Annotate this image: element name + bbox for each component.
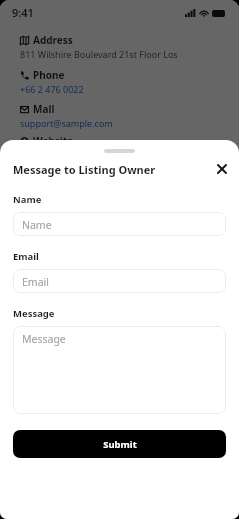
staticText: Name (13, 193, 42, 206)
button[interactable]: Message (13, 326, 226, 414)
staticText: support@sample.com (20, 117, 113, 129)
button[interactable]: Name (13, 212, 226, 236)
staticText: Email (22, 275, 49, 287)
staticText: +66 2 476 0022 (20, 83, 84, 95)
button[interactable]: Close (211, 158, 233, 180)
staticText: Message (22, 332, 66, 346)
button[interactable]: Address (0, 33, 239, 60)
staticText: Address (33, 33, 73, 47)
staticText: Mall (33, 102, 55, 116)
staticText: Message to Listing Owner (13, 162, 211, 177)
button[interactable]: Submit (13, 430, 226, 458)
staticText: Message (13, 307, 55, 320)
button[interactable]: Phone (0, 68, 239, 95)
staticText: Email (13, 250, 39, 263)
staticText: Website (33, 134, 74, 148)
staticText: Name (22, 218, 52, 230)
button[interactable]: Dismiss (0, 0, 239, 519)
staticText: Phone (33, 68, 65, 82)
button[interactable]: Email (13, 269, 226, 293)
staticText: 811 Wilshire Boulevard 21st Floor Los (20, 48, 178, 60)
staticText: Submit (103, 438, 137, 451)
staticText: 9:41 (12, 5, 34, 20)
button[interactable]: Website (0, 134, 239, 161)
button[interactable]: Mall (0, 102, 239, 129)
